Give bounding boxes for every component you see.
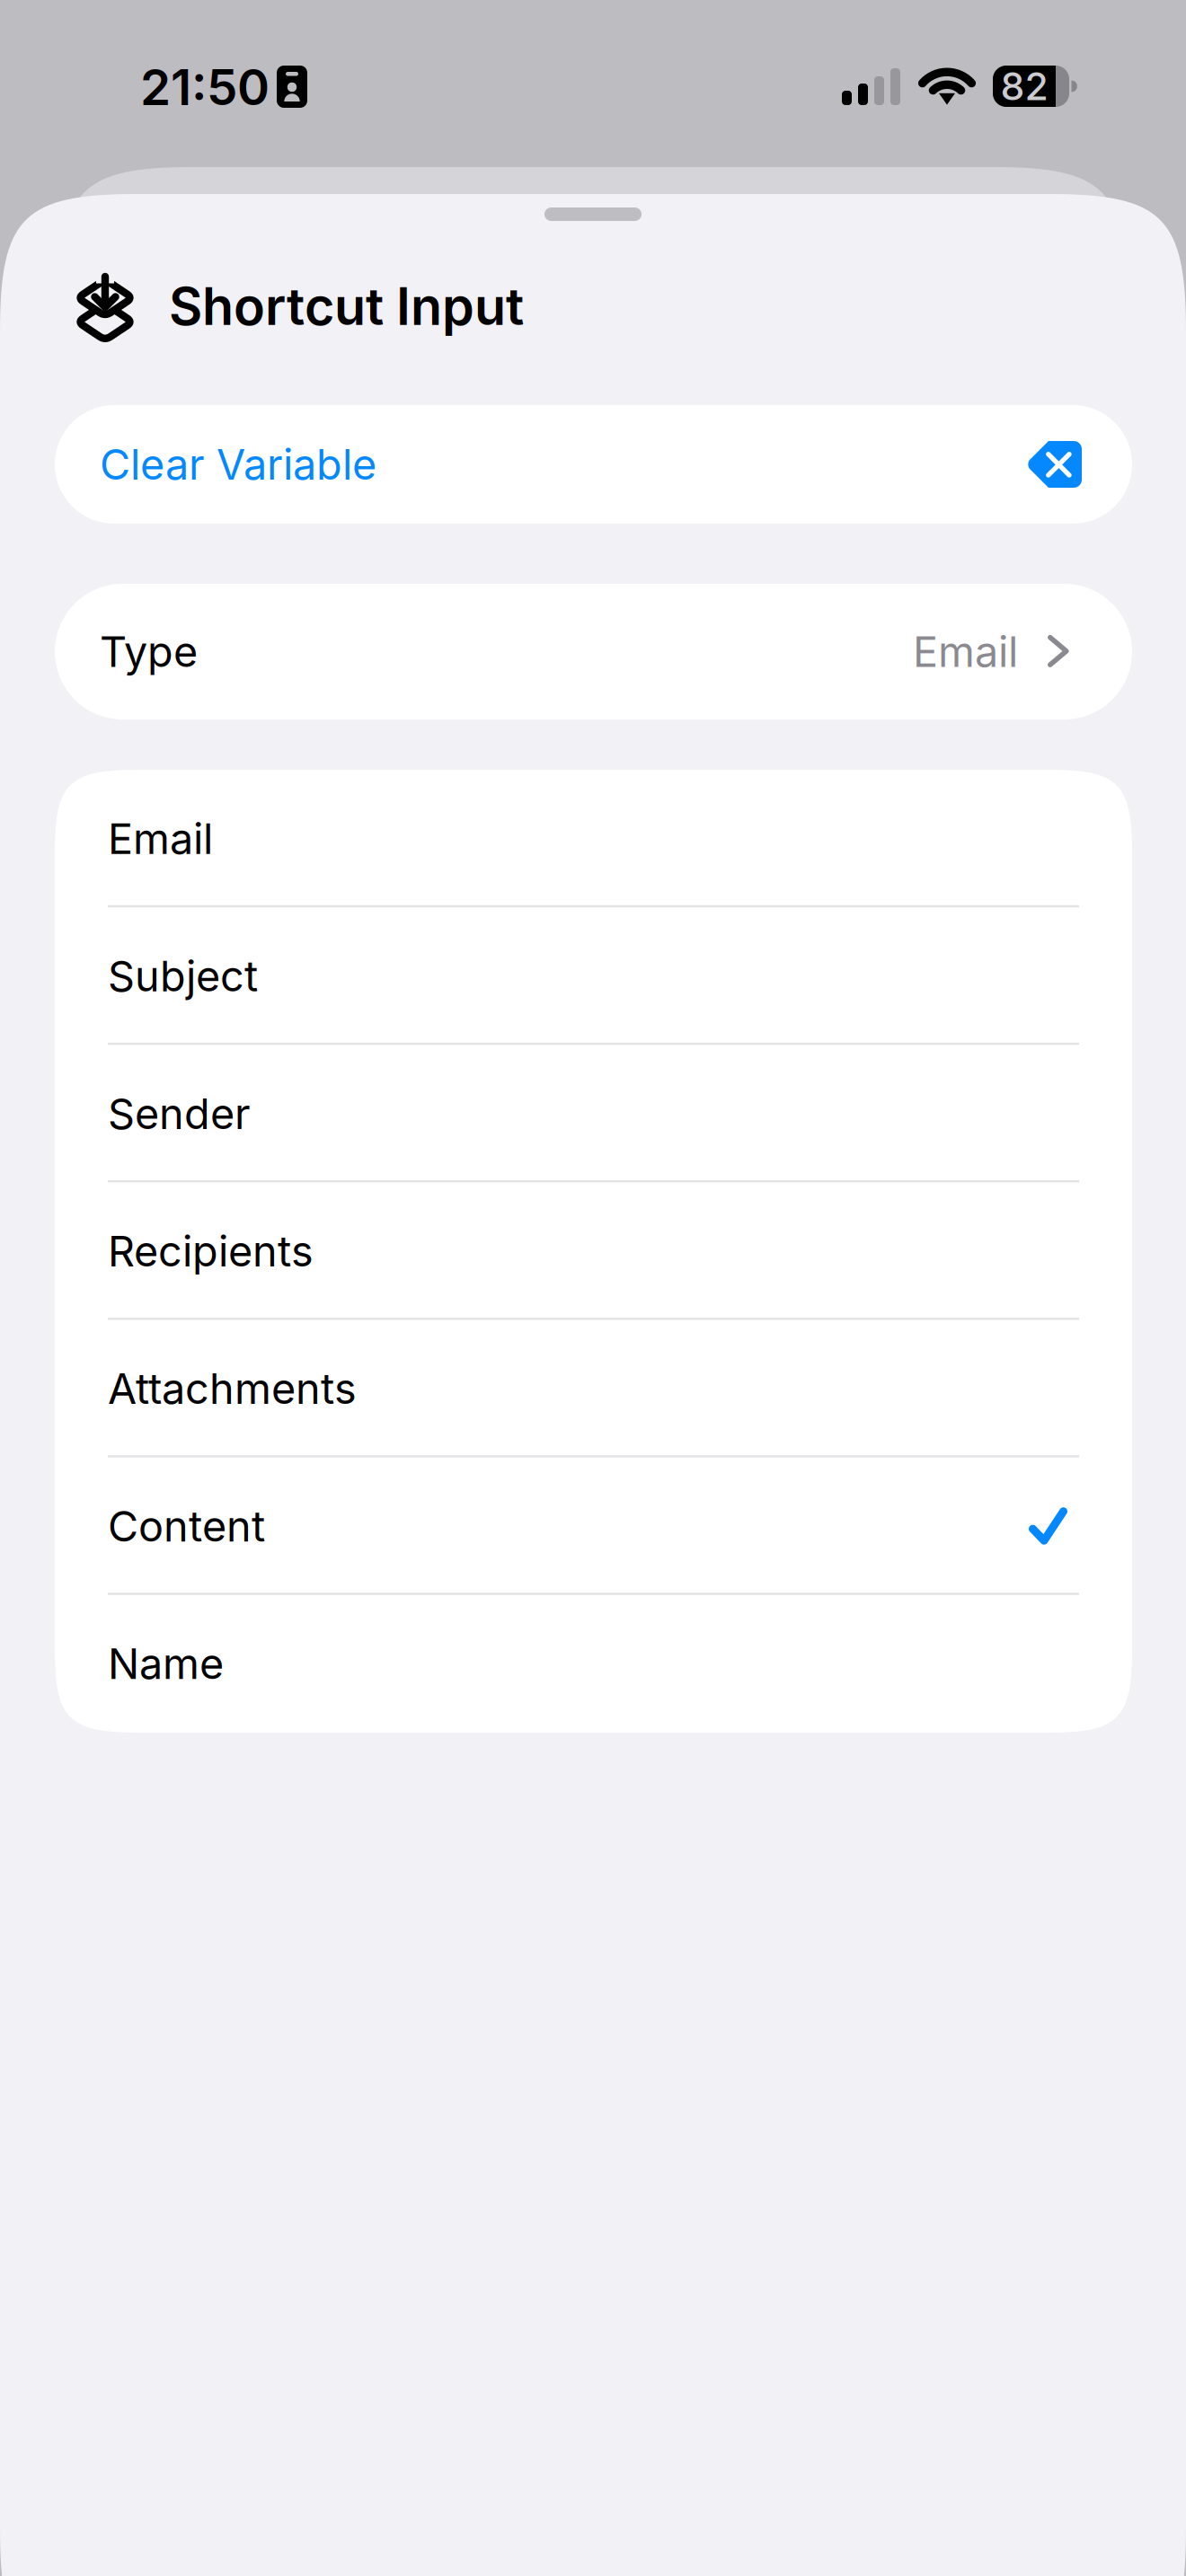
button[interactable]: Subject <box>55 907 1132 1045</box>
staticText: Shortcut Input <box>169 275 524 337</box>
staticText: Email <box>108 813 213 864</box>
staticText: Name <box>108 1638 224 1689</box>
staticText: Content <box>108 1501 265 1552</box>
staticText: 21:50 <box>140 57 270 117</box>
button[interactable]: Clear Variable <box>55 405 1132 524</box>
staticText: Subject <box>108 951 258 1002</box>
button[interactable]: Sender <box>55 1045 1132 1182</box>
button[interactable]: Attachments <box>55 1320 1132 1457</box>
staticText: Email <box>913 626 1018 677</box>
staticText: Recipients <box>108 1226 314 1277</box>
button[interactable]: Type <box>55 584 1132 719</box>
staticText: Sender <box>108 1088 251 1139</box>
staticText: Type <box>100 626 198 677</box>
staticText: Attachments <box>108 1363 357 1414</box>
button[interactable]: Content <box>55 1457 1132 1595</box>
button[interactable]: Name <box>55 1595 1132 1733</box>
staticText: Clear Variable <box>100 439 376 490</box>
button[interactable]: Email <box>55 770 1132 907</box>
button[interactable]: Recipients <box>55 1182 1132 1320</box>
staticText: 82 <box>1000 63 1048 109</box>
